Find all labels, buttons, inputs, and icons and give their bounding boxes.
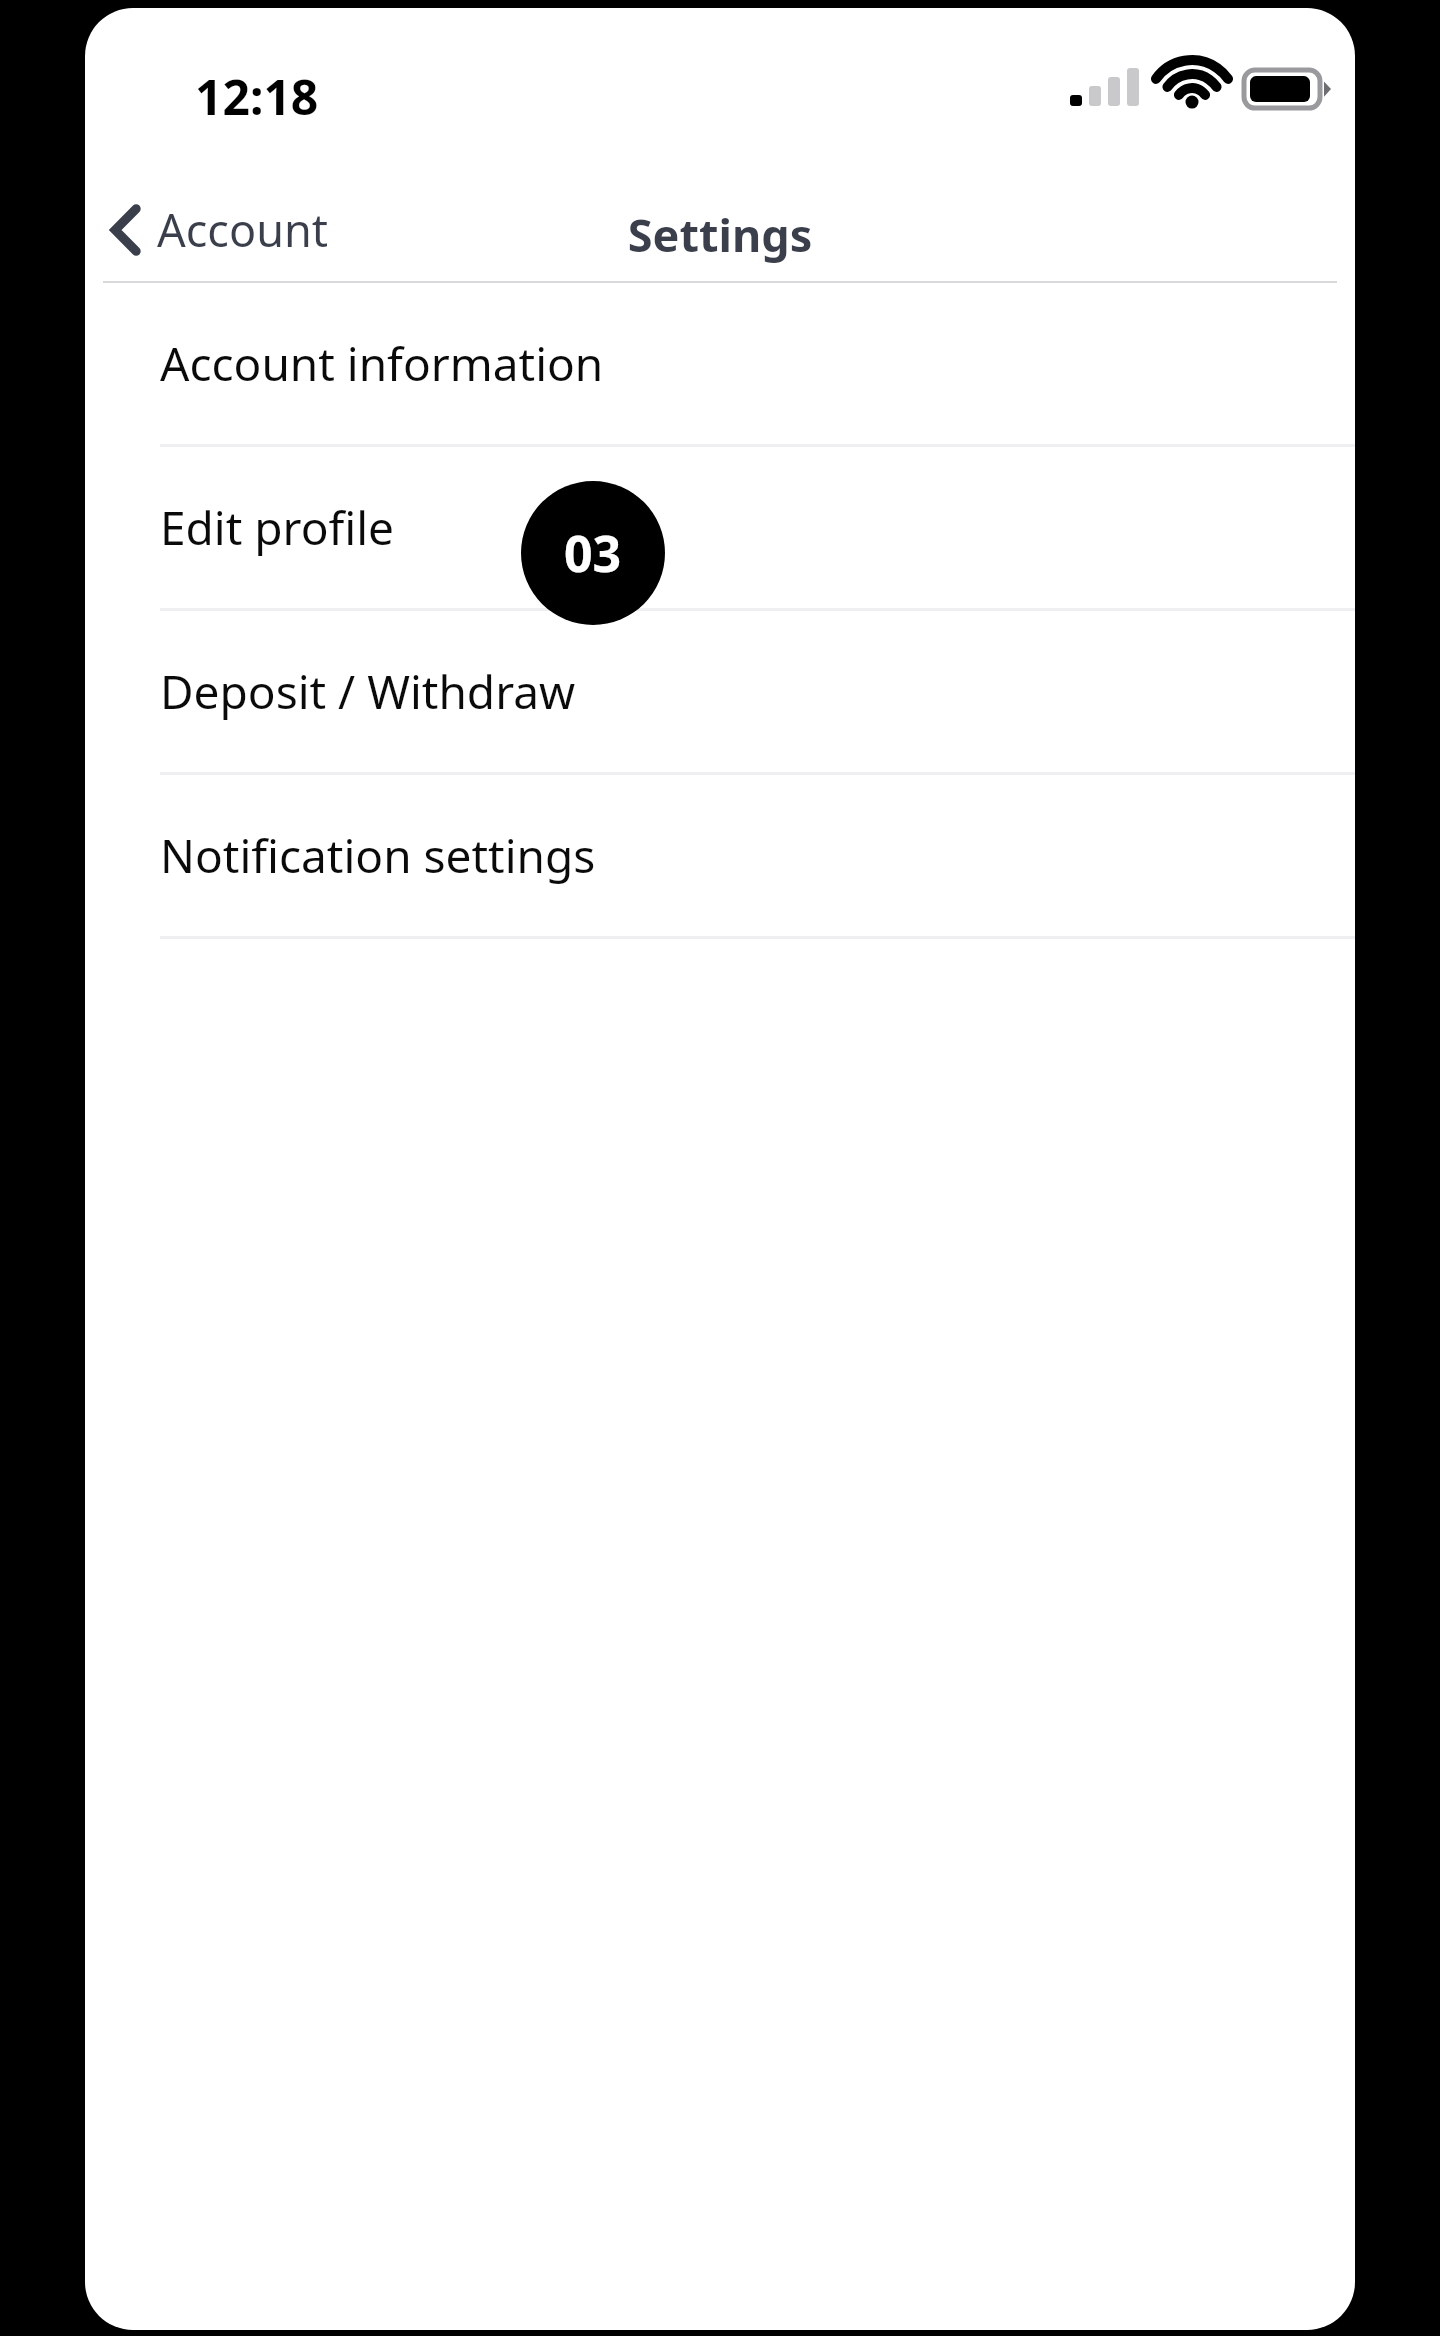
staticText: Edit profile <box>160 496 395 559</box>
staticText: Settings <box>85 204 1355 265</box>
staticText: Account information <box>160 332 604 395</box>
button[interactable]: Account <box>95 176 343 283</box>
staticText: 03 <box>564 519 622 587</box>
button[interactable]: 03 <box>521 481 665 625</box>
staticText: Deposit / Withdraw <box>160 660 576 723</box>
button[interactable]: Account information <box>85 283 1355 444</box>
staticText: Notification settings <box>160 824 596 887</box>
staticText: 12:18 <box>195 64 319 129</box>
button[interactable]: Deposit / Withdraw <box>85 611 1355 772</box>
button[interactable]: Notification settings <box>85 775 1355 936</box>
staticText: Account <box>157 199 329 260</box>
button[interactable]: Edit profile <box>85 447 1355 608</box>
